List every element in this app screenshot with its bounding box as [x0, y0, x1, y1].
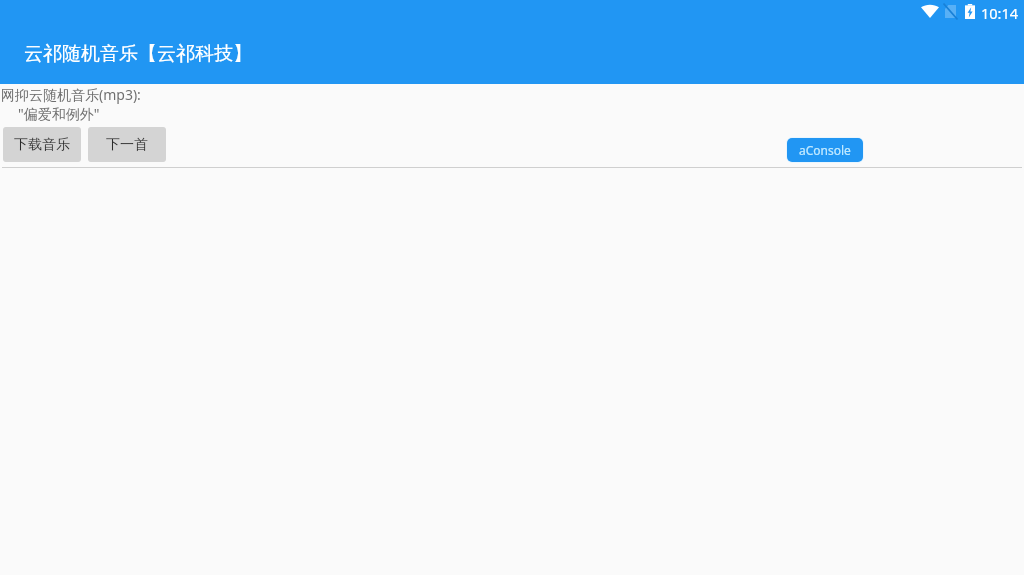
- staticText: aConsole: [799, 142, 851, 158]
- staticText: 下载音乐: [14, 136, 70, 154]
- button[interactable]: 下载音乐: [3, 127, 81, 162]
- staticText: 下一首: [106, 136, 148, 154]
- other: Battery charging: [965, 4, 975, 19]
- other: No SIM card: [945, 5, 956, 18]
- button[interactable]: aConsole: [786, 137, 864, 163]
- staticText: "偏爱和例外": [18, 104, 100, 123]
- button[interactable]: 下一首: [88, 127, 166, 162]
- other: Wi-Fi signal: [921, 4, 939, 18]
- staticText: 10:14: [981, 3, 1019, 23]
- staticText: 网抑云随机音乐(mp3):: [1, 85, 141, 104]
- staticText: 云祁随机音乐【云祁科技】: [24, 42, 252, 66]
